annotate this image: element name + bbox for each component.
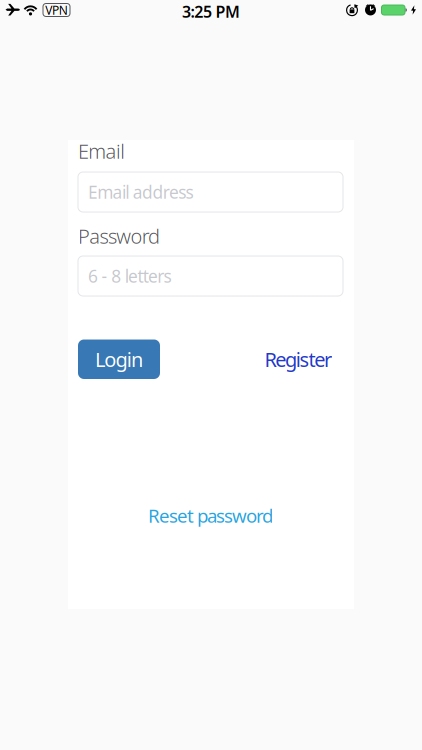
- staticText: Reset password: [148, 503, 273, 528]
- button[interactable]: Login: [78, 339, 160, 379]
- staticText: Email address: [88, 180, 194, 203]
- button[interactable]: Email address: [78, 172, 343, 212]
- button[interactable]: 6 - 8 letters: [78, 256, 343, 296]
- button[interactable]: Reset password: [148, 503, 273, 528]
- staticText: Email: [78, 138, 125, 164]
- staticText: Password: [78, 223, 160, 249]
- button[interactable]: Register: [264, 346, 332, 373]
- staticText: VPN: [45, 2, 68, 18]
- staticText: 6 - 8 letters: [88, 264, 172, 287]
- staticText: Login: [95, 346, 143, 373]
- staticText: 3:25 PM: [182, 1, 240, 22]
- staticText: Register: [264, 346, 332, 373]
